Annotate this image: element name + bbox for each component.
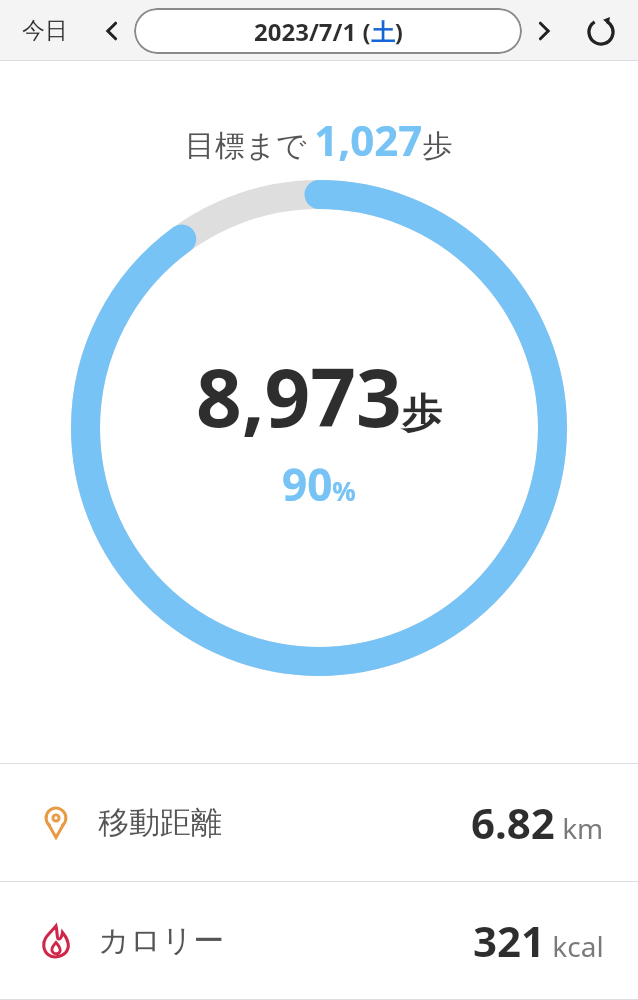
staticText: 今日 <box>22 16 68 45</box>
staticText: 2023/7/1 (土) <box>254 15 403 48</box>
button[interactable]: 2023/7/1 (土) <box>134 8 522 54</box>
button[interactable]: Next day <box>524 11 564 51</box>
staticText: 移動距離 <box>98 803 222 842</box>
staticText: 6.82 km <box>471 794 604 851</box>
button[interactable]: カロリー <box>0 882 638 999</box>
staticText: 目標まで 1,027歩 <box>185 111 453 168</box>
button[interactable]: Previous day <box>92 11 132 51</box>
button[interactable]: 移動距離 <box>0 764 638 881</box>
button[interactable]: Refresh <box>578 8 624 54</box>
staticText: カロリー <box>98 921 225 960</box>
staticText: 321 kcal <box>473 912 604 969</box>
button[interactable]: 今日 <box>18 10 72 51</box>
staticText: 8,973歩 <box>196 341 442 450</box>
staticText: 90% <box>282 454 356 514</box>
